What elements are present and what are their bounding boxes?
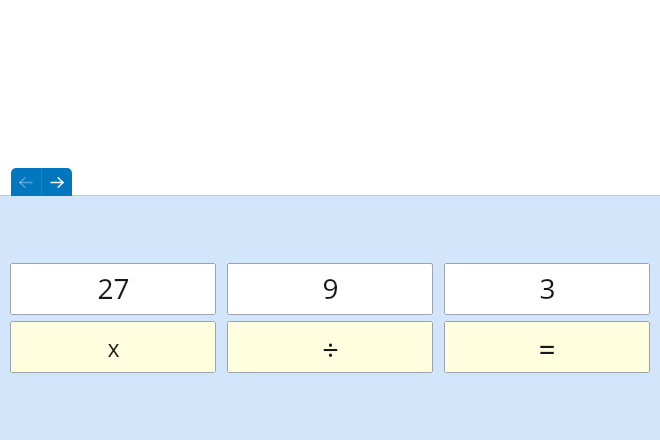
button[interactable]: Back (11, 168, 41, 196)
button[interactable]: ÷ (227, 321, 433, 373)
staticText: 27 (97, 269, 130, 307)
button[interactable]: Forward (42, 168, 72, 196)
staticText: = (538, 329, 556, 370)
staticText: 3 (539, 269, 556, 307)
button[interactable]: 27 (10, 263, 216, 315)
button[interactable]: = (444, 321, 650, 373)
button[interactable]: 3 (444, 263, 650, 315)
button[interactable]: 9 (227, 263, 433, 315)
staticText: ÷ (322, 330, 339, 369)
button[interactable]: x (10, 321, 216, 373)
staticText: x (107, 332, 120, 363)
staticText: 9 (322, 269, 339, 307)
